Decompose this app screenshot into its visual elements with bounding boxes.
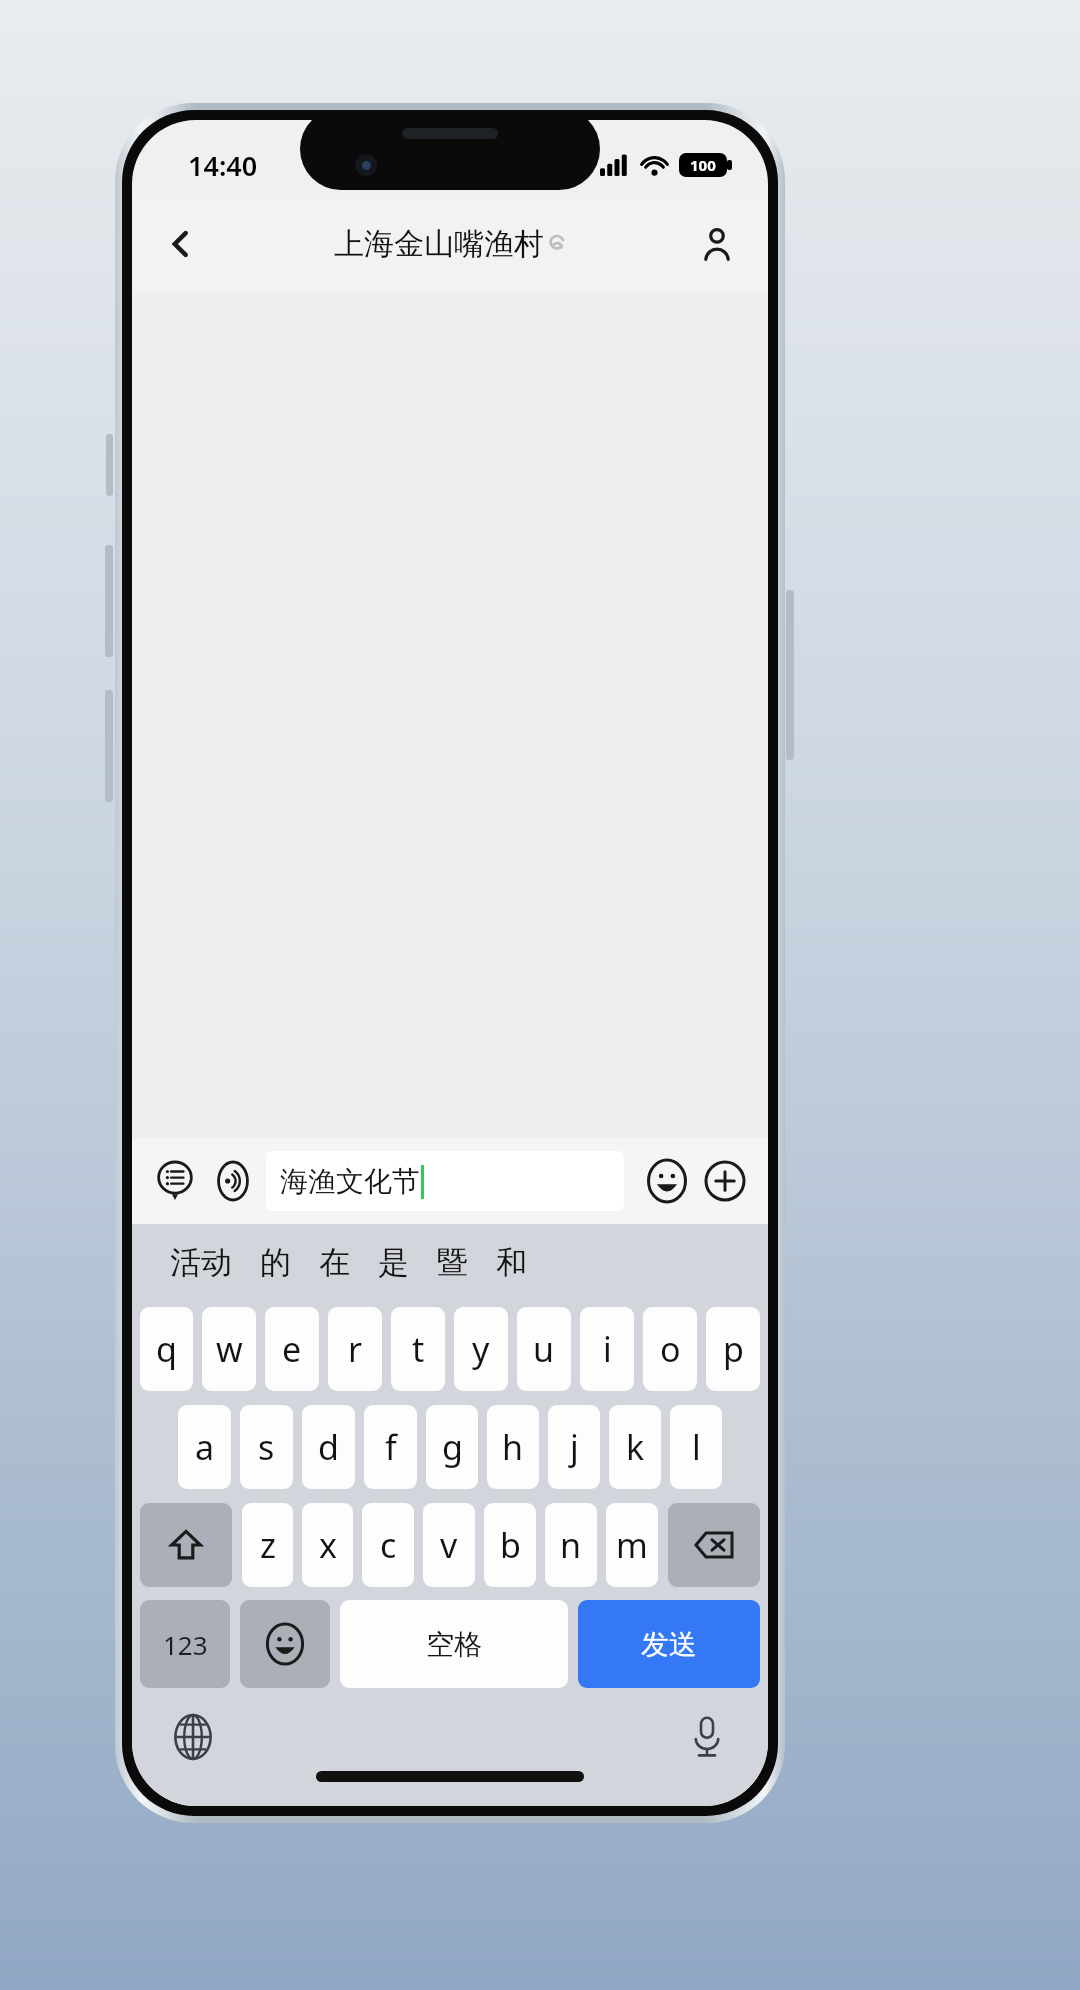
staticText: w: [216, 1326, 243, 1372]
button[interactable]: Voice input: [204, 1152, 262, 1210]
staticText: 是: [378, 1243, 409, 1282]
staticText: 活动: [170, 1243, 232, 1282]
button[interactable]: Keyboard mode: [146, 1152, 204, 1210]
button[interactable]: 123: [140, 1600, 230, 1688]
button[interactable]: i: [580, 1307, 634, 1391]
staticText: s: [258, 1424, 275, 1470]
staticText: 的: [260, 1243, 291, 1282]
button[interactable]: n: [545, 1503, 597, 1587]
staticText: r: [348, 1326, 363, 1372]
button[interactable]: 空格: [340, 1600, 568, 1688]
staticText: f: [385, 1424, 397, 1470]
button[interactable]: l: [670, 1405, 722, 1489]
staticText: k: [626, 1424, 645, 1470]
staticText: u: [533, 1326, 555, 1372]
staticText: h: [502, 1424, 524, 1470]
button[interactable]: c: [362, 1503, 414, 1587]
button[interactable]: v: [423, 1503, 475, 1587]
button[interactable]: d: [302, 1405, 355, 1489]
button[interactable]: 发送: [578, 1600, 760, 1688]
staticText: 暨: [437, 1243, 468, 1282]
button[interactable]: 活动: [156, 1224, 246, 1300]
button[interactable]: b: [484, 1503, 536, 1587]
staticText: a: [195, 1424, 215, 1470]
button[interactable]: k: [609, 1405, 661, 1489]
staticText: z: [260, 1522, 276, 1568]
button[interactable]: 暨: [423, 1224, 482, 1300]
button[interactable]: o: [643, 1307, 697, 1391]
button[interactable]: Change language: [160, 1704, 226, 1770]
button[interactable]: x: [302, 1503, 353, 1587]
staticText: q: [156, 1326, 177, 1372]
staticText: 100: [690, 155, 716, 175]
button[interactable]: u: [517, 1307, 571, 1391]
staticText: 14:40: [188, 147, 258, 184]
staticText: p: [723, 1326, 744, 1372]
button[interactable]: Emoji: [638, 1152, 696, 1210]
button[interactable]: Back: [150, 213, 212, 275]
button[interactable]: Voice dictation: [674, 1704, 740, 1770]
staticText: j: [570, 1424, 579, 1470]
button[interactable]: Profile: [686, 213, 748, 275]
button[interactable]: f: [364, 1405, 417, 1489]
button[interactable]: s: [240, 1405, 293, 1489]
staticText: 上海金山嘴渔村: [334, 225, 544, 263]
button[interactable]: m: [606, 1503, 658, 1587]
staticText: v: [440, 1522, 458, 1568]
staticText: x: [319, 1522, 337, 1568]
button[interactable]: e: [265, 1307, 319, 1391]
staticText: b: [500, 1522, 521, 1568]
button[interactable]: q: [140, 1307, 193, 1391]
staticText: 和: [496, 1243, 527, 1282]
button[interactable]: a: [178, 1405, 231, 1489]
button[interactable]: w: [202, 1307, 256, 1391]
staticText: 发送: [641, 1627, 697, 1662]
button[interactable]: Shift: [140, 1503, 232, 1587]
button[interactable]: More: [696, 1152, 754, 1210]
staticText: c: [380, 1522, 397, 1568]
button[interactable]: z: [242, 1503, 293, 1587]
staticText: 空格: [426, 1627, 482, 1662]
staticText: t: [412, 1326, 425, 1372]
button[interactable]: Backspace: [668, 1503, 760, 1587]
staticText: l: [692, 1424, 701, 1470]
button[interactable]: 是: [364, 1224, 423, 1300]
staticText: n: [560, 1522, 582, 1568]
staticText: 海渔文化节: [280, 1164, 420, 1199]
button[interactable]: Emoji keyboard: [240, 1600, 330, 1688]
staticText: g: [442, 1424, 463, 1470]
staticText: 在: [319, 1243, 350, 1282]
staticText: o: [660, 1326, 681, 1372]
button[interactable]: t: [391, 1307, 445, 1391]
button[interactable]: y: [454, 1307, 508, 1391]
button[interactable]: r: [328, 1307, 382, 1391]
button[interactable]: g: [426, 1405, 478, 1489]
button[interactable]: 和: [482, 1224, 541, 1300]
staticText: m: [616, 1522, 648, 1568]
button[interactable]: 海渔文化节: [266, 1151, 624, 1211]
staticText: i: [603, 1326, 612, 1372]
staticText: e: [282, 1326, 302, 1372]
button[interactable]: 的: [246, 1224, 305, 1300]
staticText: d: [318, 1424, 339, 1470]
button[interactable]: 在: [305, 1224, 364, 1300]
button[interactable]: p: [706, 1307, 760, 1391]
button[interactable]: h: [487, 1405, 539, 1489]
staticText: y: [472, 1326, 490, 1372]
button[interactable]: j: [548, 1405, 600, 1489]
staticText: 123: [163, 1627, 208, 1662]
